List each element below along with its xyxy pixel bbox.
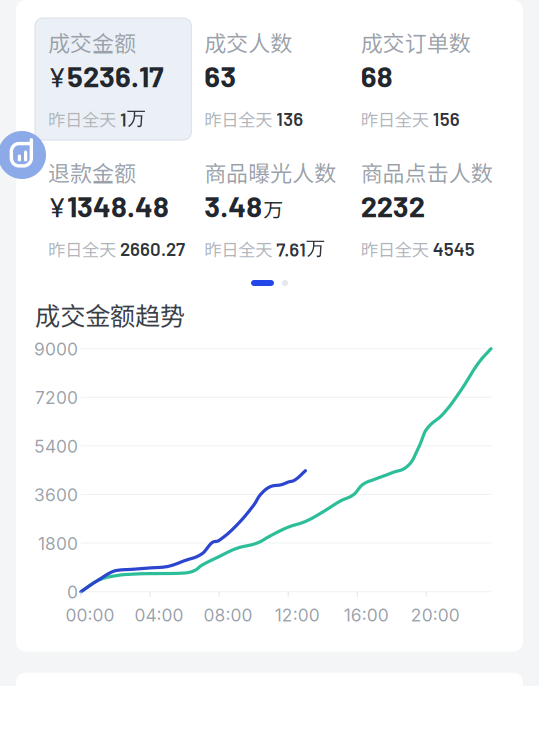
button[interactable]: 成交金额: [35, 18, 191, 140]
staticText: 08:00: [204, 605, 253, 626]
staticText: 1万: [120, 107, 146, 130]
staticText: 昨日全天: [361, 106, 429, 131]
staticText: 成交人数: [204, 26, 292, 58]
staticText: 3600: [34, 484, 78, 505]
staticText: 63: [204, 58, 236, 93]
staticText: 7200: [35, 387, 78, 408]
staticText: 成交金额: [48, 26, 136, 58]
staticText: 3.48: [204, 188, 262, 223]
button[interactable]: 退款金额: [35, 148, 191, 270]
staticText: 16:00: [344, 605, 389, 626]
button[interactable]: 成交人数: [191, 18, 348, 140]
staticText: 00:00: [65, 605, 114, 626]
staticText: 昨日全天: [204, 236, 272, 261]
staticText: 5236.17: [67, 58, 164, 93]
staticText: 136: [276, 107, 303, 130]
staticText: 昨日全天: [48, 236, 116, 261]
staticText: 成交金额趋势: [35, 296, 185, 333]
staticText: 万: [263, 194, 283, 223]
button[interactable]: 数据助手: [0, 131, 46, 179]
staticText: 04:00: [135, 605, 184, 626]
staticText: 昨日全天: [361, 236, 429, 261]
staticText: 5400: [34, 436, 78, 457]
staticText: 156: [433, 107, 460, 130]
staticText: 9000: [34, 339, 78, 360]
staticText: ¥: [48, 60, 66, 92]
staticText: 1348.48: [67, 188, 169, 223]
staticText: 商品曝光人数: [204, 156, 336, 188]
staticText: 2232: [361, 188, 425, 223]
button[interactable]: 商品点击人数: [348, 148, 504, 270]
button[interactable]: 商品曝光人数: [191, 148, 348, 270]
staticText: 7.61万: [276, 237, 325, 260]
staticText: 2660.27: [120, 237, 185, 260]
staticText: 昨日全天: [48, 106, 116, 131]
staticText: 0: [67, 582, 78, 603]
staticText: 成交订单数: [361, 26, 471, 58]
staticText: ¥: [48, 190, 66, 222]
staticText: 12:00: [275, 605, 320, 626]
staticText: 商品点击人数: [361, 156, 493, 188]
staticText: 1800: [38, 533, 78, 554]
staticText: 退款金额: [48, 156, 136, 188]
staticText: 68: [361, 58, 393, 93]
staticText: 4545: [433, 237, 475, 260]
staticText: 20:00: [411, 605, 460, 626]
button[interactable]: 成交订单数: [348, 18, 504, 140]
staticText: 昨日全天: [204, 106, 272, 131]
